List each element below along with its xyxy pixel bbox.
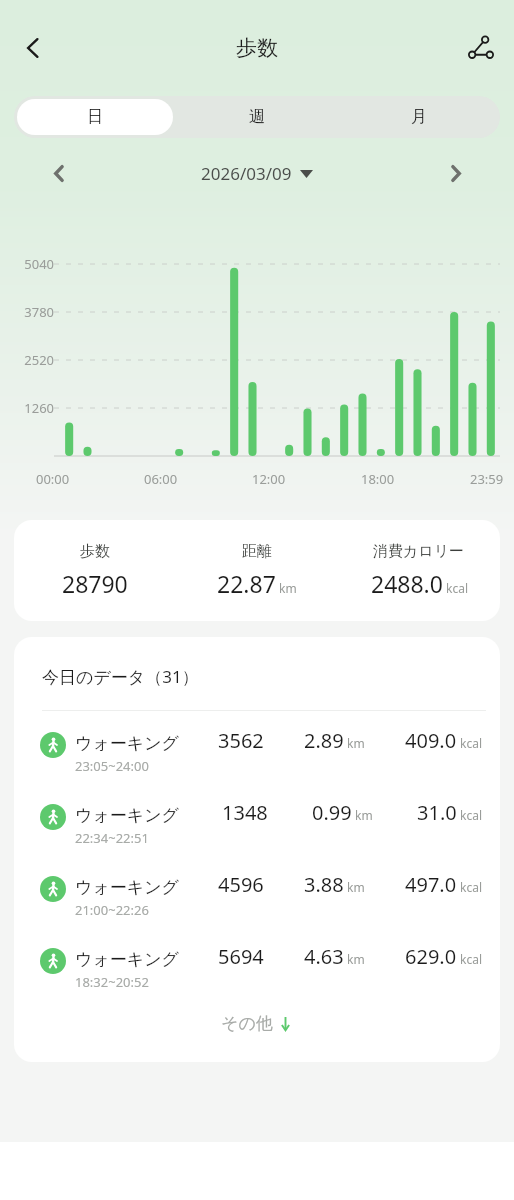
staticText: 月 [411,107,427,127]
staticText: ウォーキング [75,877,179,898]
button[interactable]: ウォーキング [14,855,500,927]
staticText: 4596 [218,871,264,898]
button[interactable]: Previous day [40,154,78,192]
staticText: 4.63 [304,943,344,970]
staticText: 18:00 [361,470,470,488]
button[interactable]: Back [8,23,58,73]
button[interactable]: その他 [14,999,500,1062]
button[interactable]: 週 [179,99,335,135]
button[interactable]: 2026/03/09 [201,162,313,185]
staticText: 1260 [0,399,54,417]
staticText: その他 [221,1013,273,1034]
staticText: 5040 [0,255,54,273]
staticText: 今日のデータ（31） [42,665,199,688]
staticText: 3.88 [304,871,344,898]
staticText: 5694 [218,943,264,970]
staticText: 3780 [0,303,54,321]
staticText: km [347,735,365,751]
staticText: 歩数 [80,542,110,561]
staticText: 22.87 [217,568,276,599]
staticText: kcal [460,879,482,895]
staticText: 2026/03/09 [201,162,292,185]
staticText: 2.89 [304,727,344,754]
staticText: 1348 [222,799,268,826]
staticText: 497.0 [405,871,457,898]
staticText: 2520 [0,351,54,369]
button[interactable]: 歩数 [14,520,500,621]
staticText: 28790 [62,568,128,599]
staticText: 距離 [242,542,272,561]
staticText: 3562 [218,727,264,754]
staticText: ウォーキング [75,733,179,754]
staticText: 2488.0 [371,568,443,599]
staticText: km [279,580,297,596]
staticText: 12:00 [252,470,361,488]
staticText: km [347,951,365,967]
staticText: kcal [460,807,482,823]
staticText: 409.0 [405,727,457,754]
staticText: 日 [87,107,103,127]
button[interactable]: Share [456,23,506,73]
staticText: 23:59 [470,470,504,488]
staticText: kcal [460,735,482,751]
staticText: 18:32~20:52 [75,973,149,991]
button[interactable]: 日 [17,99,173,135]
staticText: ウォーキング [75,949,179,970]
staticText: 23:05~24:00 [75,757,149,775]
button[interactable]: ウォーキング [14,711,500,783]
button[interactable]: ウォーキング [14,783,500,855]
staticText: 31.0 [417,799,457,826]
staticText: 21:00~22:26 [75,901,149,919]
staticText: km [355,807,373,823]
staticText: 消費カロリー [373,542,465,561]
staticText: 歩数 [236,35,278,61]
staticText: 22:34~22:51 [75,829,149,847]
staticText: 0.99 [312,799,352,826]
button[interactable]: ウォーキング [14,927,500,999]
staticText: ウォーキング [75,805,179,826]
staticText: km [347,879,365,895]
staticText: kcal [446,580,468,596]
staticText: 629.0 [405,943,457,970]
button[interactable]: 月 [341,99,497,135]
staticText: 週 [249,107,265,127]
staticText: 00:00 [36,470,144,488]
button[interactable]: Next day [436,154,474,192]
staticText: 06:00 [144,470,252,488]
staticText: kcal [460,951,482,967]
